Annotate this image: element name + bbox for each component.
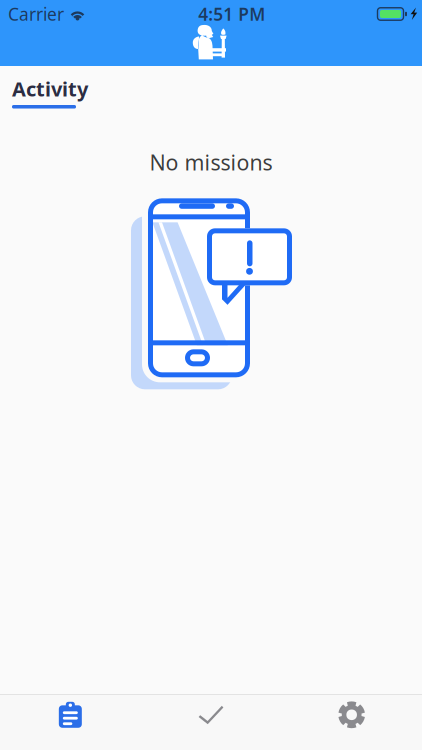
staticText: Carrier [8,2,64,25]
button[interactable]: Activity [0,61,88,115]
staticText: Activity [12,75,88,102]
button[interactable]: Missions [0,702,141,728]
button[interactable]: Settings [281,702,422,728]
staticText: No missions [149,148,272,176]
button[interactable]: Completed [141,702,281,728]
staticText: 4:51 PM [198,2,265,25]
